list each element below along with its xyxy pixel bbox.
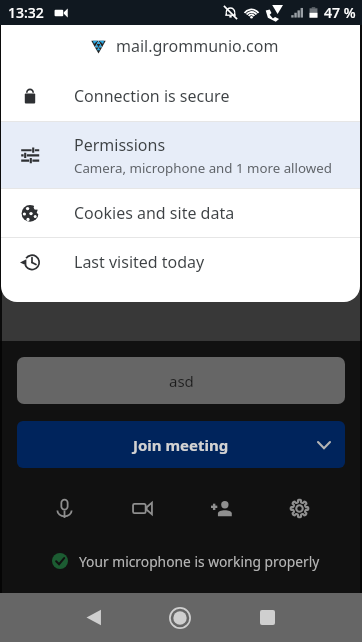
- staticText: Your microphone is working properly: [79, 552, 320, 571]
- button[interactable]: Settings: [277, 486, 321, 530]
- button[interactable]: Recents: [243, 593, 291, 642]
- staticText: mail.grommunio.com: [116, 35, 279, 57]
- button[interactable]: Last visited today: [1, 238, 360, 286]
- staticText: Permissions: [74, 134, 166, 156]
- staticText: Connection is secure: [74, 85, 230, 107]
- button[interactable]: Camera: [120, 486, 164, 530]
- button[interactable]: Permissions: [1, 122, 360, 188]
- button[interactable]: Home: [156, 593, 204, 642]
- staticText: 13:32: [8, 3, 44, 22]
- button[interactable]: Join meeting: [17, 421, 345, 468]
- staticText: Camera, microphone and 1 more allowed: [74, 159, 332, 177]
- staticText: 47 %: [324, 3, 356, 22]
- staticText: Last visited today: [74, 251, 205, 273]
- staticText: Join meeting: [133, 435, 229, 455]
- button[interactable]: Connection is secure: [1, 71, 360, 121]
- button[interactable]: Back: [70, 593, 118, 642]
- button[interactable]: Add person: [199, 486, 243, 530]
- staticText: Cookies and site data: [74, 202, 235, 224]
- staticText: asd: [169, 371, 194, 391]
- button[interactable]: Cookies and site data: [1, 189, 360, 237]
- button[interactable]: Microphone: [42, 486, 86, 530]
- button[interactable]: asd: [17, 357, 345, 404]
